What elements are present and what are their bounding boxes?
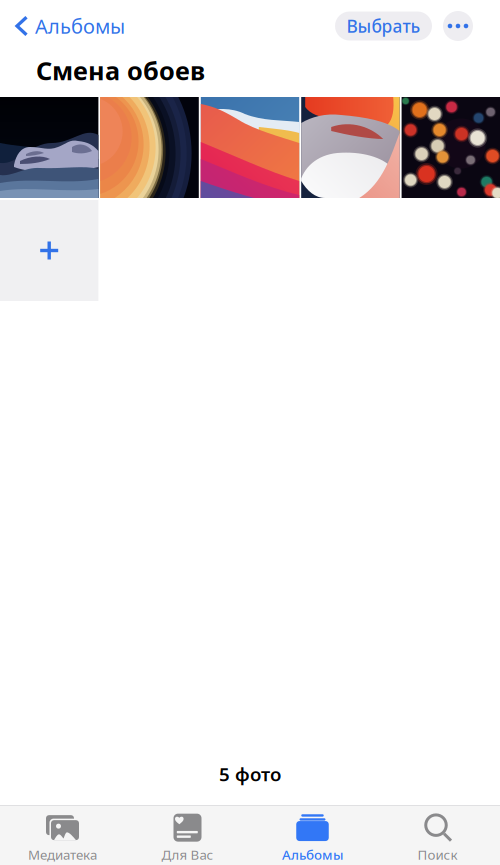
- button[interactable]: Альбомы: [0, 5, 133, 47]
- staticText: 5 фото: [219, 761, 281, 786]
- button[interactable]: Add photos: [0, 200, 98, 301]
- button[interactable]: Медиатека: [0, 805, 125, 865]
- staticText: Поиск: [417, 846, 457, 863]
- staticText: Альбомы: [35, 13, 125, 39]
- staticText: Альбомы: [282, 846, 343, 863]
- button[interactable]: Выбрать: [335, 11, 432, 40]
- staticText: Выбрать: [346, 14, 420, 37]
- button[interactable]: Альбомы: [250, 805, 375, 865]
- button[interactable]: Поиск: [375, 805, 500, 865]
- staticText: Медиатека: [28, 846, 97, 863]
- staticText: Для Вас: [161, 846, 213, 863]
- button[interactable]: Для Вас: [125, 805, 250, 865]
- button[interactable]: More options: [432, 7, 500, 45]
- staticText: Смена обоев: [36, 54, 205, 87]
